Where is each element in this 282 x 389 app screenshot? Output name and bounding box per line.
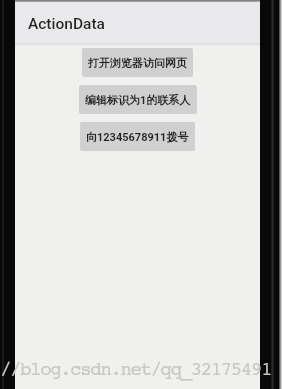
staticText: 打开浏览器访问网页 bbox=[88, 56, 187, 70]
staticText: 向12345678911拨号 bbox=[86, 130, 189, 144]
button[interactable]: 打开浏览器访问网页 bbox=[82, 48, 193, 77]
staticText: //blog.csdn.net/qq_32175491 bbox=[0, 359, 282, 381]
staticText: 编辑标识为1的联系人 bbox=[85, 93, 191, 107]
button[interactable]: 编辑标识为1的联系人 bbox=[79, 85, 197, 114]
staticText: ActionData bbox=[28, 15, 105, 33]
button[interactable]: 向12345678911拨号 bbox=[80, 122, 195, 151]
